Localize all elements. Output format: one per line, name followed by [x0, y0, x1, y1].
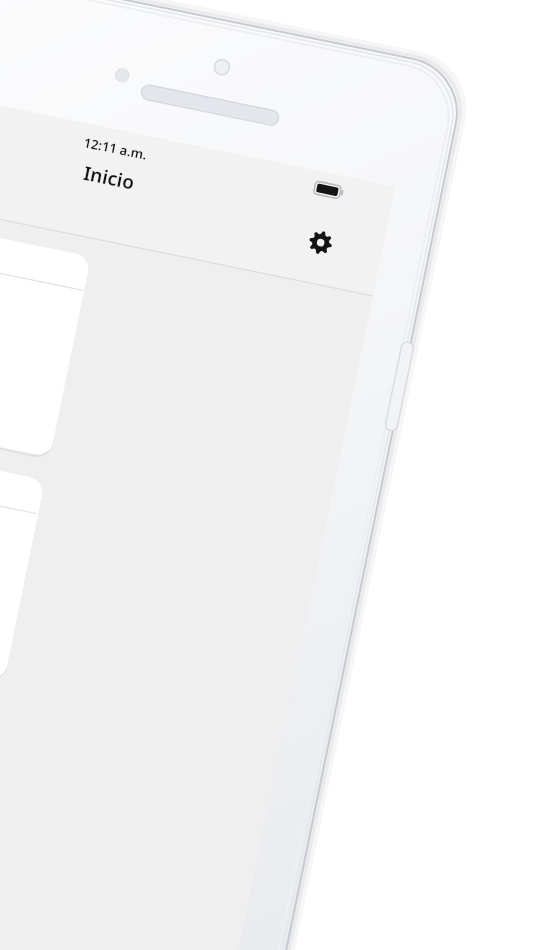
button[interactable]: Settings: [290, 219, 336, 265]
button[interactable]: [0, 262, 302, 474]
button[interactable]: [0, 488, 282, 700]
